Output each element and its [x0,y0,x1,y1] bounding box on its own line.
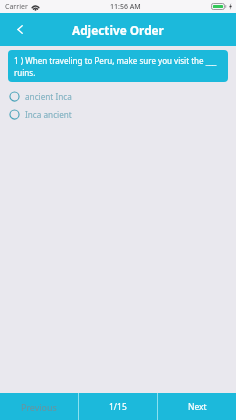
staticText: 1/15 [109,401,127,413]
button[interactable]: Back [11,21,28,38]
button[interactable]: Next [158,393,236,420]
button[interactable]: 1/15 [79,393,157,420]
staticText: Carrier [5,2,28,12]
staticText: Inca ancient [25,109,72,120]
staticText: Previous [21,401,57,413]
staticText: 11:56 AM [110,2,141,12]
staticText: Adjective Order [72,22,164,38]
staticText: Next [188,401,207,413]
button[interactable]: Inca ancient [0,105,236,123]
button[interactable]: ancient Inca [0,87,236,105]
staticText: ancient Inca [25,91,72,102]
staticText: 1 ) When traveling to Peru, make sure yo… [14,55,222,78]
button[interactable]: Previous [0,393,78,420]
